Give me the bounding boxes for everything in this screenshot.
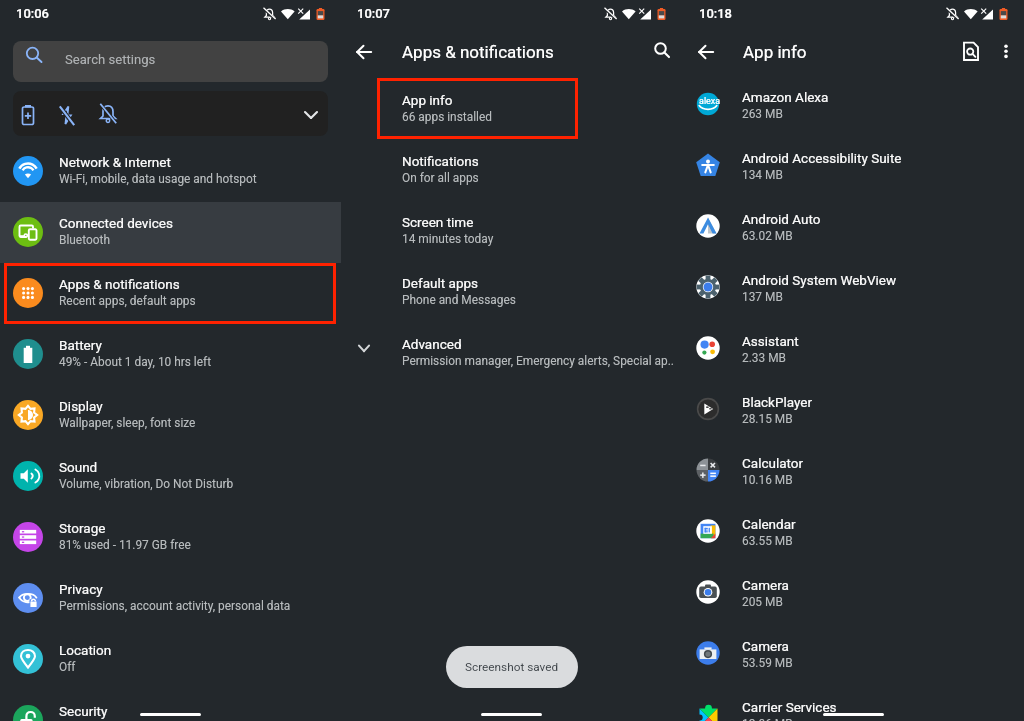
staticText: Screen time [402, 214, 474, 230]
button[interactable]: Location [0, 629, 341, 690]
button[interactable]: Android System WebView [683, 259, 1024, 320]
button[interactable]: Privacy [0, 568, 341, 629]
button[interactable]: Storage [0, 507, 341, 568]
staticText: App info [743, 42, 807, 62]
staticText: Search settings [65, 52, 156, 67]
button[interactable]: Calculator [683, 442, 1024, 503]
staticText: Carrier Services [742, 699, 837, 715]
staticText: 10:06 [16, 6, 49, 21]
staticText: Location [59, 642, 112, 658]
staticText: 63.55 MB [742, 534, 793, 548]
staticText: Calendar [742, 516, 796, 532]
staticText: On for all apps [402, 171, 479, 185]
staticText: Advanced [402, 336, 462, 352]
staticText: Assistant [742, 333, 799, 349]
button[interactable]: Back [350, 37, 380, 67]
button[interactable]: Camera [683, 625, 1024, 686]
staticText: Screenshot saved [465, 660, 559, 674]
button[interactable]: Search settings [13, 41, 328, 82]
button[interactable]: Back [692, 37, 722, 67]
button[interactable]: Security [0, 690, 341, 721]
staticText: Connected devices [59, 215, 173, 231]
staticText: Android Accessibility Suite [742, 150, 902, 166]
staticText: Calculator [742, 455, 804, 471]
button[interactable]: BlackPlayer [683, 381, 1024, 442]
staticText: Notifications [402, 153, 479, 169]
button[interactable]: Do Not Disturb [93, 99, 123, 129]
staticText: 12.06 MB [742, 717, 793, 721]
staticText: 2.33 MB [742, 351, 786, 365]
staticText: Off [59, 660, 76, 674]
button[interactable]: Display [0, 385, 341, 446]
staticText: 134 MB [742, 168, 783, 182]
button[interactable]: Apps & notifications [0, 263, 341, 324]
staticText: Default apps [402, 275, 479, 291]
staticText: Battery [59, 337, 102, 353]
staticText: 263 MB [742, 107, 783, 121]
staticText: App info [402, 92, 453, 108]
button[interactable]: Camera [683, 564, 1024, 625]
button[interactable]: alexa [683, 76, 1024, 137]
staticText: 66 apps installed [402, 110, 492, 124]
staticText: Android System WebView [742, 272, 897, 288]
staticText: Apps & notifications [402, 42, 554, 62]
staticText: Phone and Messages [402, 293, 516, 307]
staticText: 10:07 [357, 6, 390, 21]
button[interactable]: Expand advanced [349, 331, 379, 361]
button[interactable]: Android Accessibility Suite [683, 137, 1024, 198]
button[interactable]: App info [341, 79, 683, 140]
staticText: Recent apps, default apps [59, 294, 196, 308]
button[interactable]: Sound [0, 446, 341, 507]
staticText: Camera [742, 577, 789, 593]
staticText: Volume, vibration, Do Not Disturb [59, 477, 234, 491]
staticText: Permission manager, Emergency alerts, Sp… [402, 354, 674, 368]
button[interactable]: Connected devices [0, 202, 341, 263]
staticText: Storage [59, 520, 106, 536]
staticText: Wi-Fi, mobile, data usage and hotspot [59, 172, 257, 186]
staticText: 205 MB [742, 595, 783, 609]
button[interactable]: Expand [296, 100, 326, 130]
button[interactable]: Battery Saver [13, 101, 43, 131]
button[interactable]: Flashlight [52, 101, 82, 131]
staticText: alexa [699, 96, 721, 107]
button[interactable]: Carrier Services [683, 686, 1024, 721]
staticText: 81% used - 11.97 GB free [59, 538, 191, 552]
staticText: Security [59, 703, 108, 719]
button[interactable]: Calendar [683, 503, 1024, 564]
staticText: Display [59, 398, 103, 414]
button[interactable]: Search apps [956, 36, 986, 66]
staticText: Bluetooth [59, 233, 110, 247]
button[interactable]: Screen time [341, 201, 683, 262]
staticText: Camera [742, 638, 789, 654]
button[interactable]: Network & Internet [0, 141, 341, 202]
staticText: 10.16 MB [742, 473, 793, 487]
button[interactable]: Search [646, 37, 676, 67]
staticText: Amazon Alexa [742, 89, 829, 105]
staticText: 63.02 MB [742, 229, 793, 243]
staticText: Network & Internet [59, 154, 171, 170]
button[interactable]: Notifications [341, 140, 683, 201]
staticText: Apps & notifications [59, 276, 180, 292]
button[interactable]: Assistant [683, 320, 1024, 381]
button[interactable]: More options [991, 36, 1021, 66]
staticText: 49% - About 1 day, 10 hrs left [59, 355, 212, 369]
staticText: Sound [59, 459, 98, 475]
button[interactable]: Advanced [341, 323, 683, 384]
staticText: 28.15 MB [742, 412, 793, 426]
staticText: Android Auto [742, 211, 821, 227]
button[interactable]: Default apps [341, 262, 683, 323]
staticText: BlackPlayer [742, 394, 813, 410]
staticText: Wallpaper, sleep, font size [59, 416, 196, 430]
staticText: 53.59 MB [742, 656, 793, 670]
staticText: 10:18 [699, 6, 732, 21]
staticText: Permissions, account activity, personal … [59, 599, 291, 613]
staticText: 137 MB [742, 290, 783, 304]
staticText: Privacy [59, 581, 103, 597]
button[interactable]: Android Auto [683, 198, 1024, 259]
staticText: 14 minutes today [402, 232, 494, 246]
button[interactable]: Battery [0, 324, 341, 385]
